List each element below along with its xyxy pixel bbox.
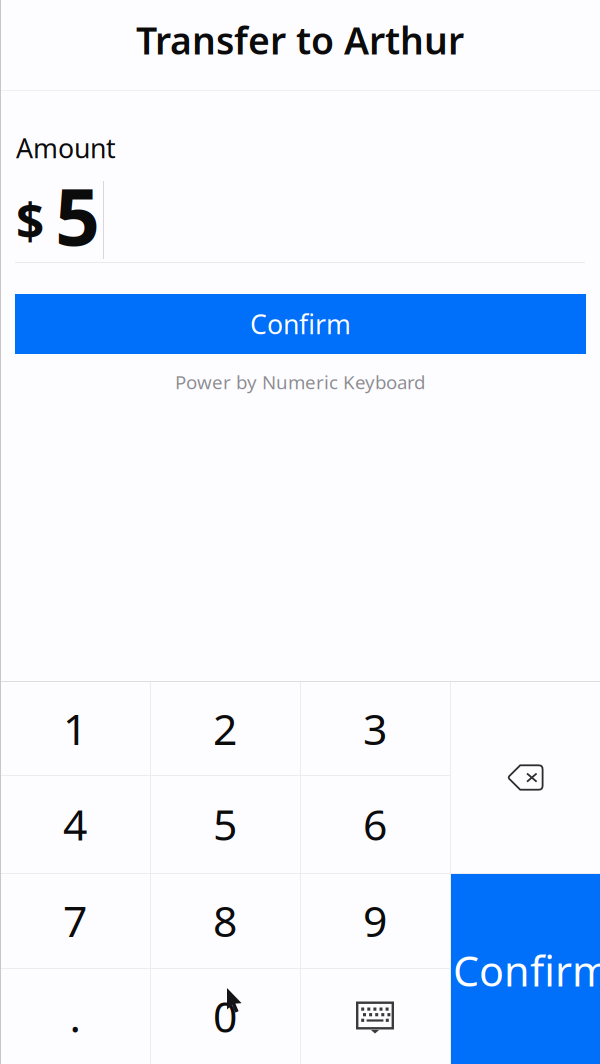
button[interactable]: 6	[300, 775, 450, 873]
staticText: 8	[213, 892, 237, 949]
staticText: $	[16, 187, 44, 253]
staticText: 5	[55, 163, 100, 267]
staticText: Confirm	[453, 943, 600, 998]
button[interactable]: 3	[300, 682, 450, 775]
staticText: .	[69, 988, 80, 1044]
staticText: Amount	[16, 130, 116, 166]
button[interactable]: 0	[150, 968, 300, 1064]
staticText: 6	[363, 796, 387, 852]
staticText: 9	[363, 892, 387, 949]
button[interactable]: 9	[300, 873, 450, 968]
button[interactable]: 1	[0, 682, 150, 775]
button[interactable]: Confirm	[451, 873, 600, 1064]
staticText: 3	[363, 700, 387, 757]
staticText: Power by Numeric Keyboard	[175, 370, 425, 394]
button[interactable]: Amount	[0, 91, 600, 264]
staticText: 0	[213, 988, 237, 1044]
button[interactable]: Confirm	[15, 294, 586, 354]
staticText: 5	[213, 796, 237, 852]
button[interactable]: Delete	[451, 682, 600, 873]
button[interactable]: 5	[150, 775, 300, 873]
staticText: 1	[63, 700, 87, 757]
staticText: 7	[63, 892, 87, 949]
staticText: 4	[63, 796, 87, 852]
button[interactable]: 7	[0, 873, 150, 968]
button[interactable]: .	[0, 968, 150, 1064]
staticText: 2	[213, 700, 237, 757]
button[interactable]: 4	[0, 775, 150, 873]
button[interactable]: 8	[150, 873, 300, 968]
button[interactable]: Dismiss keyboard	[300, 968, 450, 1064]
staticText: Confirm	[250, 306, 351, 342]
button[interactable]: 2	[150, 682, 300, 775]
staticText: Transfer to Arthur	[136, 15, 464, 65]
